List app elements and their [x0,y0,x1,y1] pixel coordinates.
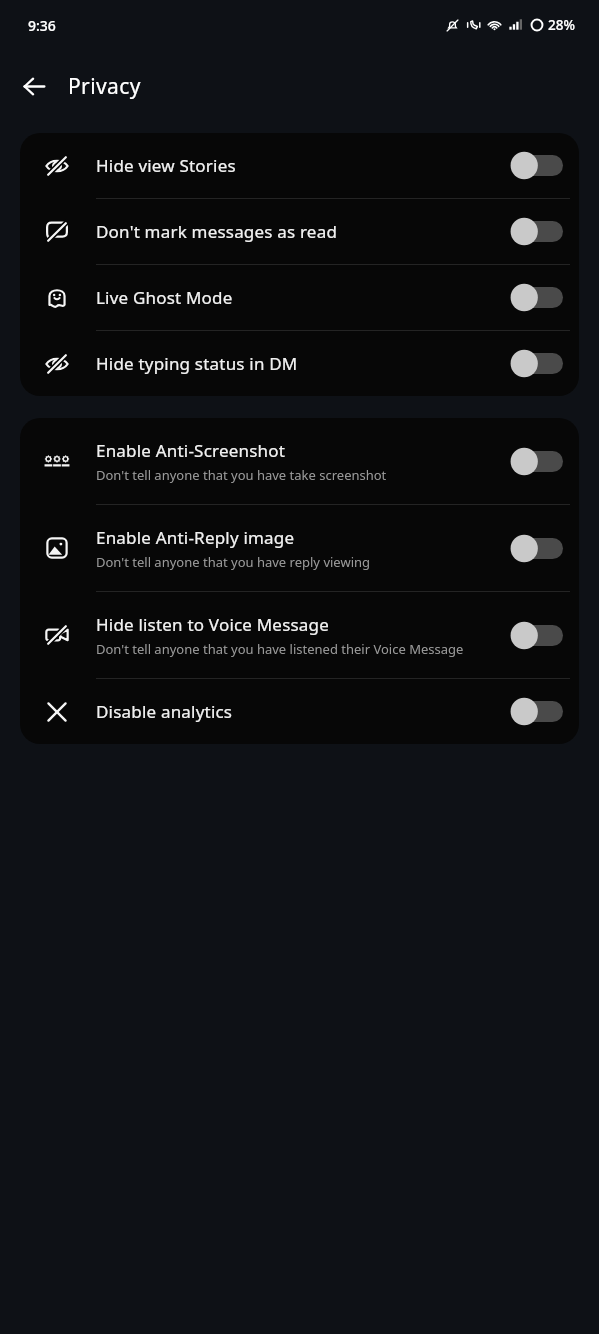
button[interactable]: Back [12,64,56,108]
button[interactable]: Hide typing status in DM [20,331,579,396]
button[interactable]: Toggle off [510,534,563,563]
staticText: Enable Anti-Screenshot [96,439,286,462]
staticText: Hide typing status in DM [96,352,298,375]
staticText: Privacy [68,72,141,101]
staticText: Enable Anti-Reply image [96,526,295,549]
button[interactable]: Toggle off [510,447,563,476]
button[interactable]: Toggle off [510,621,563,650]
staticText: Don't tell anyone that you have listened… [96,640,464,658]
staticText: Hide view Stories [96,154,236,177]
staticText: 28% [548,16,575,34]
button[interactable]: Enable Anti-Screenshot [20,418,579,505]
button[interactable]: Toggle off [510,349,563,378]
button[interactable]: Hide view Stories [20,133,579,199]
button[interactable]: Toggle off [510,283,563,312]
staticText: Don't tell anyone that you have reply vi… [96,553,371,571]
staticText: Disable analytics [96,700,233,723]
button[interactable]: Enable Anti-Reply image [20,505,579,592]
staticText: Don't mark messages as read [96,220,338,243]
button[interactable]: Toggle off [510,697,563,726]
staticText: Live Ghost Mode [96,286,233,309]
button[interactable]: Disable analytics [20,679,579,744]
button[interactable]: Live Ghost Mode [20,265,579,331]
button[interactable]: Hide listen to Voice Message [20,592,579,679]
staticText: Don't tell anyone that you have take scr… [96,466,387,484]
staticText: Hide listen to Voice Message [96,613,330,636]
button[interactable]: Don't mark messages as read [20,199,579,265]
staticText: 9:36 [28,16,56,35]
button[interactable]: Toggle off [510,151,563,180]
button[interactable]: Toggle off [510,217,563,246]
